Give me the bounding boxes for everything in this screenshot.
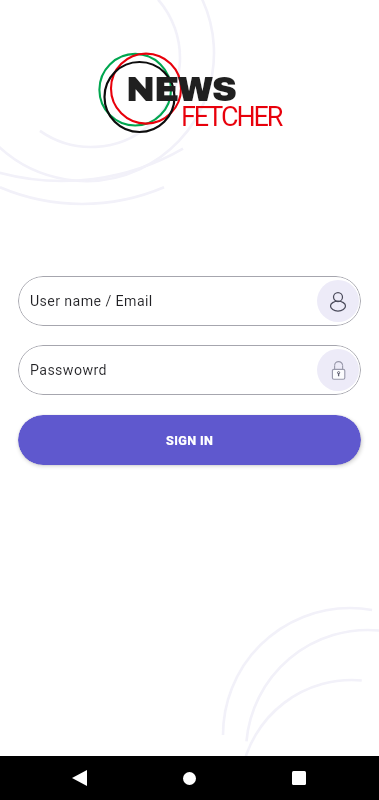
staticText: NEWS: [126, 70, 236, 108]
button[interactable]: Home: [165, 756, 213, 800]
staticText: FETCHER: [181, 101, 282, 133]
button[interactable]: User name / Email: [18, 276, 361, 326]
button[interactable]: Passwowrd: [18, 345, 361, 395]
staticText: SIGN IN: [166, 433, 214, 448]
button[interactable]: SIGN IN: [18, 415, 361, 465]
button[interactable]: Recents: [275, 756, 323, 800]
staticText: User name / Email: [30, 293, 153, 310]
staticText: Passwowrd: [30, 362, 107, 379]
button[interactable]: Back: [55, 756, 103, 800]
